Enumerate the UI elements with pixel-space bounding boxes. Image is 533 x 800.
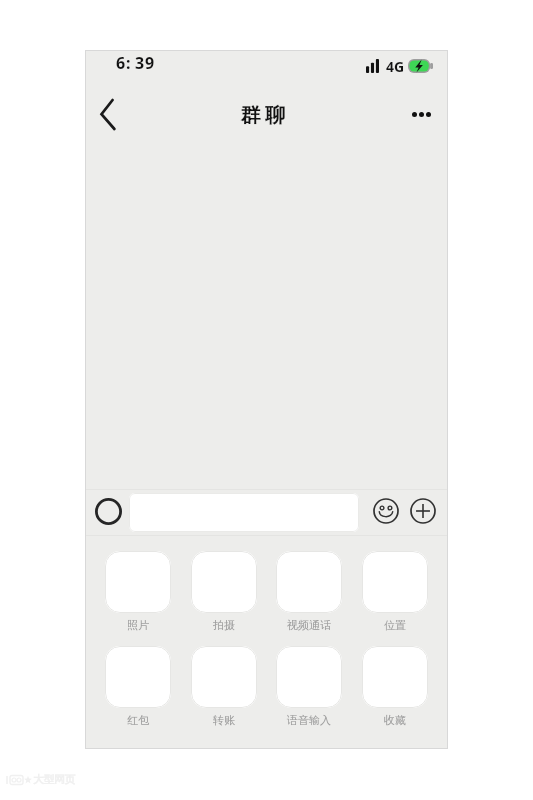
button[interactable]: Back: [86, 93, 128, 135]
staticText: 4G: [386, 57, 405, 76]
button[interactable]: 视频通话: [276, 551, 342, 632]
staticText: 群聊: [238, 103, 288, 128]
staticText: 视频通话: [287, 618, 331, 632]
button[interactable]: 拍摄: [191, 551, 257, 632]
button[interactable]: 收藏: [362, 646, 428, 727]
staticText: 语音输入: [287, 713, 331, 727]
staticText: 6: 39: [116, 52, 156, 74]
staticText: 照片: [127, 618, 149, 632]
button[interactable]: More options: [400, 94, 442, 134]
staticText: 收藏: [384, 713, 406, 727]
button[interactable]: 转账: [191, 646, 257, 727]
button[interactable]: More: [408, 498, 438, 528]
button[interactable]: Voice input: [92, 497, 124, 529]
button[interactable]: 红包: [105, 646, 171, 727]
button[interactable]: Message input: [129, 493, 359, 532]
staticText: 拍摄: [213, 618, 235, 632]
staticText: 大型网页: [33, 773, 75, 786]
button[interactable]: 照片: [105, 551, 171, 632]
button[interactable]: 语音输入: [276, 646, 342, 727]
staticText: 位置: [384, 618, 406, 632]
staticText: 转账: [213, 713, 235, 727]
button[interactable]: 位置: [362, 551, 428, 632]
button[interactable]: Emoji: [371, 498, 401, 528]
staticText: 红包: [127, 713, 149, 727]
